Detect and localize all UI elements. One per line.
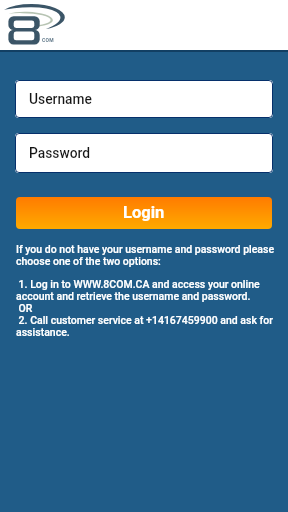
other: 8.com logo [0, 0, 72, 48]
staticText: If you do not have your username and pas… [16, 243, 278, 267]
button[interactable]: Username [15, 80, 273, 118]
staticText: Login [123, 203, 165, 222]
staticText: 1. Log in to WWW.8COM.CA and access your… [16, 278, 278, 338]
button[interactable]: Password [15, 133, 273, 173]
button[interactable]: Login [16, 197, 272, 229]
staticText: Password [29, 145, 91, 161]
staticText: Username [29, 91, 92, 107]
staticText: COM [42, 37, 55, 43]
